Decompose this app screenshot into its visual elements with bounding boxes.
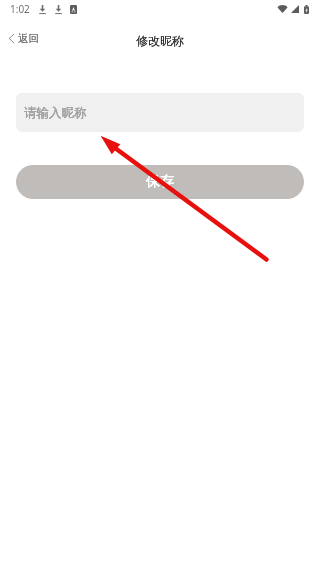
button[interactable]: 返回 Back — [5, 26, 45, 51]
staticText: 请输入昵称 — [24, 105, 87, 121]
button[interactable]: 保存 — [16, 165, 304, 199]
staticText: 保存 — [146, 173, 174, 191]
staticText: 修改昵称 — [136, 33, 184, 48]
button[interactable]: 请输入昵称 — [16, 93, 304, 132]
staticText: 保存 — [146, 173, 174, 191]
staticText: 返回 — [18, 32, 39, 45]
staticText: 请输入昵称 — [24, 105, 87, 121]
staticText: 返回 — [18, 32, 39, 45]
staticText: 1:02 — [10, 2, 30, 16]
staticText: 修改昵称 — [136, 33, 184, 48]
